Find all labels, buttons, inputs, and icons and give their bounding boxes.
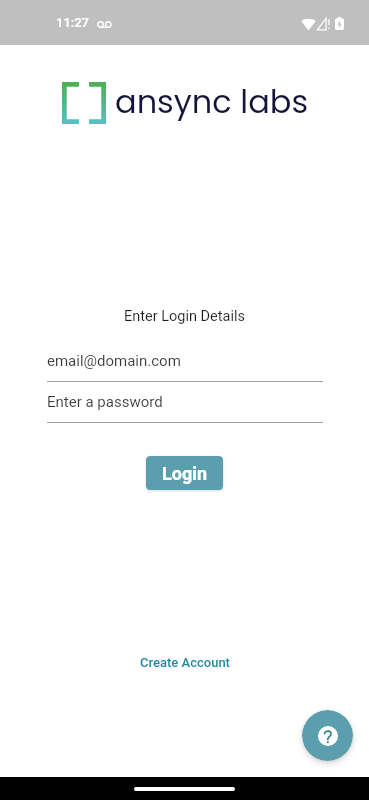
staticText: Enter Login Details xyxy=(124,308,245,325)
staticText: 11:27 xyxy=(56,15,90,30)
button[interactable]: Enter a password xyxy=(47,393,323,423)
button[interactable]: email@domain.com xyxy=(47,352,323,382)
staticText: email@domain.com xyxy=(47,352,181,370)
staticText: Login xyxy=(162,463,208,484)
staticText: Enter a password xyxy=(47,393,163,411)
staticText: Create Account xyxy=(140,655,230,670)
button[interactable]: Create Account xyxy=(132,650,238,675)
staticText: ansync labs xyxy=(115,79,309,124)
button[interactable]: Help xyxy=(302,710,353,761)
button[interactable]: Login xyxy=(146,456,223,490)
